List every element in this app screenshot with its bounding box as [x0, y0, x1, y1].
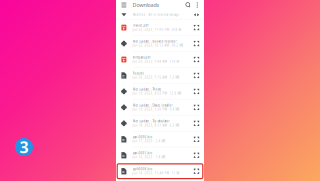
button[interactable]: Select Nice update - Tip calculator [192, 115, 201, 131]
button[interactable]: Search [183, 0, 193, 10]
button[interactable]: shiftpads.pdf [116, 51, 204, 67]
button[interactable]: invoice.pdf [116, 20, 204, 36]
staticText: Jun 19, 2023, 4:03 PM · 12.8 MB [133, 92, 182, 95]
staticText: Jun 19, 2023, 1:20 PM · 9.4 MB [133, 108, 180, 111]
staticText: scan-0001.bin [133, 151, 153, 155]
staticText: Jun 22, 2023, 11:06 PM · 204 kB [133, 28, 182, 31]
staticText: scan-0000.bin [133, 135, 153, 139]
staticText: Jun 22, 2023, 10:12 AM · 38.2 MB [133, 44, 184, 47]
button[interactable]: Nice update - Device installer [116, 99, 204, 115]
button[interactable]: Nice update - Tip calculator [116, 115, 204, 131]
button[interactable]: Select shiftpads.pdf [192, 51, 201, 67]
button[interactable]: Select Nice update - Booked recorder [192, 36, 201, 52]
button[interactable]: scan-0001.bin [116, 147, 204, 163]
staticText: Downloads [133, 1, 160, 9]
button[interactable]: Navigation menu [120, 0, 128, 10]
button[interactable]: Records [116, 67, 204, 83]
staticText: Nice update - Booked recorder [133, 40, 177, 43]
button[interactable]: Select scpfr0008.bin [192, 163, 201, 179]
button[interactable]: scan-0000.bin [116, 131, 204, 147]
staticText: Jun 18, 2023, 8:51 AM · 6.2 MB [133, 124, 180, 127]
button[interactable]: Select Nice update - Theme [192, 83, 201, 99]
staticText: Jun 20, 2023, 7:15 AM · 1.2 MB [133, 76, 180, 79]
staticText: Jun 17, 2023 · 2.4 MB [133, 140, 166, 143]
button[interactable]: More options [193, 0, 201, 10]
staticText: Nice update - Tip calculator [133, 119, 170, 123]
staticText: scpfr0008.bin [133, 167, 153, 171]
staticText: Records [133, 72, 144, 75]
button[interactable]: Select scan-0000.bin [192, 131, 201, 147]
button[interactable]: Select Records [192, 67, 201, 83]
staticText: 3 [19, 136, 28, 158]
staticText: Jun 14, 2023, 11:48 PM · 11 kB [133, 171, 180, 175]
staticText: Jun 16, 2023 · 1.8 MB [133, 155, 166, 159]
staticText: shiftpads.pdf [133, 56, 151, 59]
staticText: Modified · All in Internal storage [133, 13, 180, 16]
button[interactable]: Select Nice update - Device installer [192, 99, 201, 115]
button[interactable]: Sort by modified [120, 10, 128, 20]
staticText: Jun 20, 2023, 9:44 AM · 118 kB [133, 60, 180, 63]
button[interactable]: scpfr0008.bin [116, 163, 204, 179]
button[interactable]: Nice update - Theme [116, 83, 204, 99]
button[interactable]: Change view [192, 10, 201, 20]
button[interactable]: Nice update - Booked recorder [116, 36, 204, 52]
button[interactable]: Select scan-0001.bin [192, 147, 201, 163]
staticText: invoice.pdf [133, 24, 149, 27]
staticText: Nice update - Device installer [133, 104, 173, 107]
button[interactable]: Select invoice.pdf [192, 20, 201, 36]
staticText: Nice update - Theme [133, 88, 162, 91]
